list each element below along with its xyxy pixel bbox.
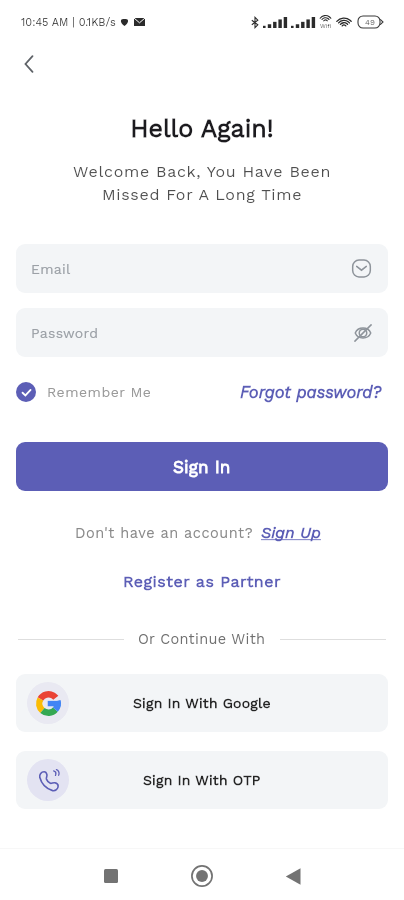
- staticText: Sign In With Google: [133, 695, 271, 711]
- staticText: Or Continue With: [138, 631, 266, 648]
- staticText: Password: [31, 325, 99, 341]
- staticText: Wifi: [320, 22, 332, 29]
- staticText: 10:45 AM | 0.1KB/s: [21, 16, 116, 29]
- button[interactable]: Sign In With Google: [16, 674, 388, 732]
- staticText: Email: [31, 261, 71, 277]
- button[interactable]: Recent apps: [89, 854, 133, 898]
- button[interactable]: Password: [16, 308, 388, 357]
- button[interactable]: Sign In With OTP: [16, 751, 388, 809]
- button[interactable]: Back: [271, 854, 315, 898]
- staticText: 49: [365, 18, 375, 27]
- staticText: Sign In With OTP: [143, 772, 261, 788]
- button[interactable]: Home: [180, 854, 224, 898]
- staticText: Sign In: [173, 457, 231, 477]
- staticText: Welcome Back, You Have Been Missed For A…: [0, 162, 404, 204]
- button[interactable]: Sign Up: [261, 523, 321, 542]
- button[interactable]: Sign In: [16, 442, 388, 491]
- button[interactable]: Register as Partner: [0, 572, 404, 591]
- button[interactable]: Forgot password?: [240, 383, 388, 402]
- button[interactable]: Back: [10, 45, 48, 83]
- staticText: Register as Partner: [123, 572, 282, 591]
- button[interactable]: Email: [16, 244, 388, 293]
- button[interactable]: Remember Me: [16, 382, 152, 402]
- staticText: Don't have an account?: [75, 525, 254, 542]
- staticText: Hello Again!: [0, 114, 404, 143]
- staticText: Remember Me: [47, 384, 152, 400]
